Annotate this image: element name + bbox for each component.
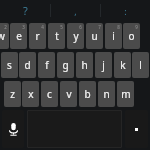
button[interactable]: i	[105, 23, 122, 49]
staticText: j	[102, 58, 105, 72]
button[interactable]: b	[79, 81, 96, 107]
button[interactable]: l	[132, 52, 149, 78]
staticText: ,	[74, 5, 77, 17]
staticText: f	[45, 58, 49, 72]
staticText: s	[7, 58, 12, 72]
staticText: e	[16, 29, 22, 43]
button[interactable]: c	[41, 81, 58, 107]
staticText: 2	[4, 24, 7, 30]
button[interactable]: y	[67, 23, 84, 49]
button[interactable]: o	[123, 23, 140, 49]
button[interactable]: f	[38, 52, 55, 78]
button[interactable]: ?	[0, 0, 50, 21]
staticText: m	[121, 87, 131, 101]
staticText: n	[103, 87, 110, 101]
button[interactable]: j	[95, 52, 112, 78]
button[interactable]: r	[29, 23, 46, 49]
button[interactable]: w	[0, 23, 9, 49]
staticText: g	[62, 58, 69, 72]
staticText: 4	[41, 24, 44, 30]
button[interactable]: e	[10, 23, 27, 49]
staticText: l	[139, 58, 142, 72]
button[interactable]: d	[19, 52, 36, 78]
staticText: 7	[98, 24, 101, 30]
staticText: z	[10, 87, 15, 101]
button[interactable]: x	[22, 81, 39, 107]
button[interactable]: g	[57, 52, 74, 78]
staticText: u	[91, 29, 98, 43]
button[interactable]: n	[98, 81, 115, 107]
staticText: c	[47, 87, 52, 101]
button[interactable]: Voice input	[2, 110, 24, 148]
button[interactable]: v	[60, 81, 77, 107]
button[interactable]: k	[114, 52, 131, 78]
staticText: :	[124, 5, 127, 17]
staticText: y	[73, 29, 79, 43]
staticText: 9	[135, 24, 138, 30]
staticText: 8	[117, 24, 120, 30]
staticText: 3	[22, 24, 25, 30]
staticText: v	[66, 87, 72, 101]
staticText: k	[120, 58, 126, 72]
staticText: ?	[23, 3, 28, 18]
button[interactable]: :	[100, 0, 150, 21]
button[interactable]: m	[117, 81, 134, 107]
button[interactable]: s	[1, 52, 18, 78]
button[interactable]: Period	[125, 110, 148, 148]
staticText: h	[81, 58, 88, 72]
staticText: r	[35, 29, 40, 43]
staticText: 6	[79, 24, 82, 30]
button[interactable]: h	[76, 52, 93, 78]
staticText: o	[128, 29, 135, 43]
staticText: b	[84, 87, 91, 101]
button[interactable]: t	[48, 23, 65, 49]
staticText: d	[24, 58, 31, 72]
staticText: x	[28, 87, 34, 101]
button[interactable]: ,	[50, 0, 100, 21]
staticText: i	[112, 29, 115, 43]
staticText: t	[55, 29, 59, 43]
staticText: w	[0, 29, 5, 43]
staticText: 5	[60, 24, 63, 30]
button[interactable]: u	[86, 23, 103, 49]
button[interactable]: z	[4, 81, 21, 107]
